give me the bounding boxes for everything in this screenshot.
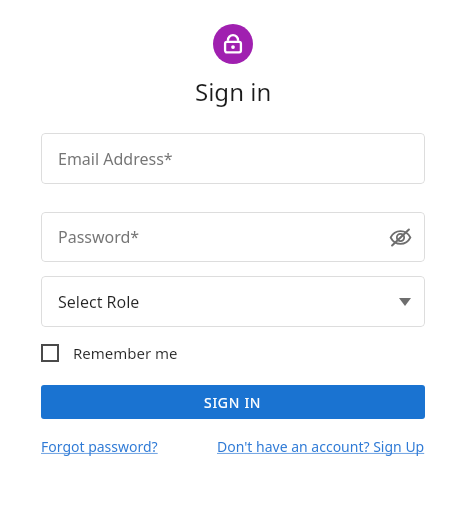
staticText: Don't have an account? Sign Up — [217, 437, 425, 456]
other: Secure sign in — [213, 24, 253, 64]
staticText: Forgot password? — [41, 437, 158, 456]
staticText: Remember me — [73, 343, 178, 363]
button[interactable]: Select Role — [41, 276, 425, 327]
staticText: Sign in — [195, 75, 272, 108]
button[interactable]: Don't have an account? Sign Up — [217, 437, 425, 456]
staticText: Password* — [58, 226, 140, 248]
staticText: SIGN IN — [204, 393, 262, 412]
staticText: Select Role — [58, 291, 140, 313]
staticText: Email Address* — [58, 148, 173, 170]
button[interactable]: Password* — [41, 212, 425, 262]
button[interactable]: SIGN IN — [41, 385, 425, 419]
button[interactable]: Show password — [383, 220, 417, 254]
button[interactable]: Email Address* — [41, 133, 425, 184]
button[interactable]: Forgot password? — [41, 437, 158, 456]
button[interactable]: Remember me — [41, 343, 178, 363]
